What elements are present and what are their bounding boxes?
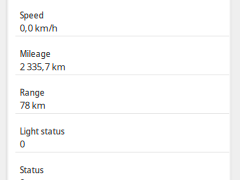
staticText: 78 km xyxy=(20,99,46,111)
staticText: Light status xyxy=(20,126,65,137)
staticText: 0,0 km/h xyxy=(20,22,58,34)
button[interactable]: Mileage xyxy=(9,37,229,75)
button[interactable]: Light status xyxy=(9,114,229,153)
staticText: Range xyxy=(20,87,45,98)
button[interactable]: Speed xyxy=(9,0,229,37)
staticText: 2 335,7 km xyxy=(20,60,66,73)
staticText: 0 xyxy=(20,176,25,180)
button[interactable]: Status xyxy=(9,153,229,180)
staticText: Speed xyxy=(20,10,44,21)
staticText: Status xyxy=(20,165,44,175)
staticText: Mileage xyxy=(20,49,51,59)
staticText: 0 xyxy=(20,138,25,150)
button[interactable]: Range xyxy=(9,75,229,114)
